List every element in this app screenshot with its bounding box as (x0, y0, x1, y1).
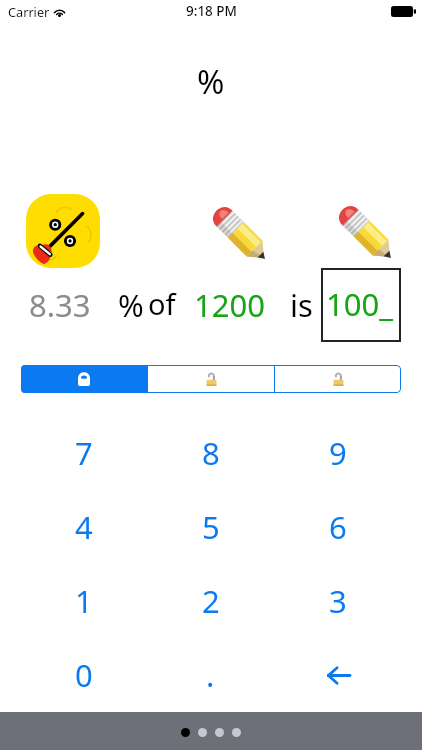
staticText: % (118, 284, 144, 326)
button[interactable]: 9 (274, 416, 401, 490)
button[interactable]: Edit result (337, 205, 390, 258)
staticText: 9 (329, 432, 347, 474)
button[interactable]: 5 (147, 490, 274, 564)
staticText: 0 (75, 654, 93, 696)
button[interactable]: Page 2 (198, 728, 207, 737)
button[interactable]: 7 (21, 416, 147, 490)
button[interactable]: . (147, 638, 274, 712)
staticText: 8.33 (29, 284, 91, 326)
button[interactable]: Lock percent (21, 365, 147, 393)
button[interactable]: Page 1 (181, 728, 190, 737)
staticText: 3 (329, 580, 347, 622)
staticText: 1 (75, 580, 93, 622)
staticText: of (148, 284, 176, 323)
staticText: 4 (75, 506, 93, 548)
button[interactable]: Percent (26, 194, 100, 268)
button[interactable]: 6 (274, 490, 401, 564)
button[interactable]: Unlock result (275, 365, 401, 393)
button[interactable]: 100_ (321, 268, 401, 342)
staticText: . (206, 654, 215, 696)
button[interactable]: Edit value (211, 206, 264, 259)
staticText: 7 (75, 432, 93, 474)
button[interactable]: Backspace (274, 638, 401, 712)
button[interactable]: Page 3 (215, 728, 224, 737)
button[interactable]: 0 (21, 638, 147, 712)
staticText: 1200 (194, 284, 265, 326)
button[interactable]: Unlock total (148, 365, 274, 393)
staticText: 100_ (326, 283, 393, 325)
staticText: 6 (329, 506, 347, 548)
staticText: 8 (202, 432, 220, 474)
button[interactable]: 8 (147, 416, 274, 490)
staticText: Carrier (8, 3, 50, 20)
staticText: 2 (202, 580, 220, 622)
button[interactable]: 2 (147, 564, 274, 638)
button[interactable]: 3 (274, 564, 401, 638)
other: Backspace (318, 655, 358, 695)
button[interactable]: 1 (21, 564, 147, 638)
staticText: is (290, 284, 313, 326)
staticText: 5 (202, 506, 220, 548)
button[interactable]: Page 4 (232, 728, 241, 737)
button[interactable]: 4 (21, 490, 147, 564)
staticText: 9:18 PM (186, 2, 237, 20)
staticText: % (197, 59, 225, 104)
